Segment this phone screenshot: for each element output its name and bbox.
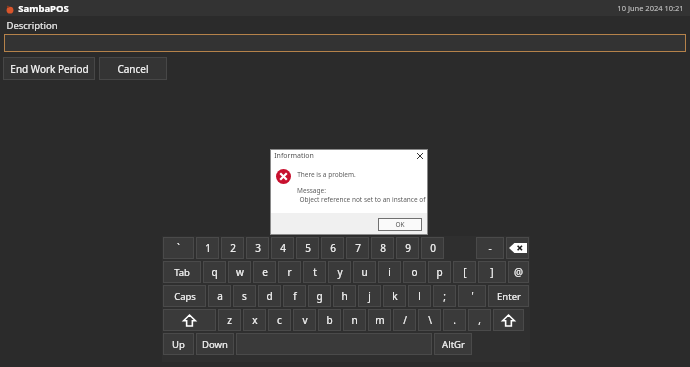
button[interactable]: 3: [246, 237, 269, 259]
button[interactable]: 1: [196, 237, 219, 259]
staticText: Information: [274, 151, 314, 161]
staticText: 0: [430, 241, 436, 255]
staticText: d: [266, 289, 273, 303]
button[interactable]: .: [443, 309, 466, 331]
staticText: -: [488, 241, 492, 255]
staticText: There is a problem.: [297, 170, 356, 179]
button[interactable]: ]: [478, 261, 506, 283]
staticText: h: [341, 289, 348, 303]
staticText: @: [514, 265, 523, 279]
button[interactable]: OK: [378, 218, 422, 231]
staticText: ': [471, 289, 474, 303]
staticText: w: [236, 265, 244, 279]
staticText: AltGr: [442, 338, 465, 351]
button[interactable]: End Work Period: [3, 57, 95, 80]
button[interactable]: Shift: [493, 309, 524, 331]
button[interactable]: z: [218, 309, 241, 331]
staticText: \: [428, 313, 432, 327]
staticText: Cancel: [117, 62, 149, 76]
button[interactable]: m: [368, 309, 391, 331]
staticText: b: [326, 313, 333, 327]
button[interactable]: Close: [415, 151, 425, 161]
staticText: p: [436, 265, 443, 279]
staticText: 2: [230, 241, 236, 255]
button[interactable]: h: [333, 285, 356, 307]
button[interactable]: c: [268, 309, 291, 331]
button[interactable]: 6: [321, 237, 344, 259]
staticText: End Work Period: [10, 62, 89, 76]
button[interactable]: x: [243, 309, 266, 331]
staticText: SambaPOS: [18, 2, 69, 15]
staticText: 8: [380, 241, 386, 255]
button[interactable]: q: [203, 261, 226, 283]
button[interactable]: 4: [271, 237, 294, 259]
button[interactable]: v: [293, 309, 316, 331]
button[interactable]: Backspace: [506, 237, 529, 259]
staticText: k: [392, 289, 398, 303]
button[interactable]: 5: [296, 237, 319, 259]
staticText: /: [403, 313, 407, 327]
staticText: 6: [330, 241, 336, 255]
button[interactable]: ,: [468, 309, 491, 331]
button[interactable]: /: [393, 309, 416, 331]
button[interactable]: [236, 333, 432, 355]
staticText: 10 June 2024 10:21: [617, 3, 684, 13]
button[interactable]: p: [428, 261, 451, 283]
button[interactable]: Tab: [163, 261, 201, 283]
button[interactable]: k: [383, 285, 406, 307]
button[interactable]: n: [343, 309, 366, 331]
staticText: a: [217, 289, 223, 303]
staticText: Tab: [174, 266, 190, 279]
button[interactable]: Caps: [163, 285, 206, 307]
staticText: q: [211, 265, 218, 279]
staticText: 5: [305, 241, 311, 255]
button[interactable]: o: [403, 261, 426, 283]
staticText: t: [313, 265, 317, 279]
button[interactable]: -: [476, 237, 504, 259]
button[interactable]: 0: [421, 237, 444, 259]
staticText: i: [388, 265, 391, 279]
staticText: Up: [172, 338, 185, 351]
button[interactable]: e: [253, 261, 276, 283]
button[interactable]: 2: [221, 237, 244, 259]
staticText: j: [368, 289, 371, 303]
button[interactable]: a: [208, 285, 231, 307]
button[interactable]: f: [283, 285, 306, 307]
button[interactable]: Up: [163, 333, 194, 355]
button[interactable]: 7: [346, 237, 369, 259]
other: Shift: [502, 314, 515, 327]
button[interactable]: g: [308, 285, 331, 307]
button[interactable]: [4, 34, 686, 52]
staticText: f: [293, 289, 297, 303]
button[interactable]: s: [233, 285, 256, 307]
button[interactable]: Cancel: [99, 57, 167, 80]
button[interactable]: b: [318, 309, 341, 331]
staticText: ;: [443, 289, 446, 303]
button[interactable]: r: [278, 261, 301, 283]
staticText: Enter: [497, 290, 521, 303]
button[interactable]: [: [453, 261, 476, 283]
staticText: u: [361, 265, 368, 279]
other: Shift: [183, 314, 196, 327]
button[interactable]: Enter: [488, 285, 529, 307]
staticText: `: [177, 241, 180, 255]
button[interactable]: d: [258, 285, 281, 307]
button[interactable]: AltGr: [434, 333, 472, 355]
button[interactable]: Shift: [163, 309, 216, 331]
button[interactable]: j: [358, 285, 381, 307]
button[interactable]: l: [408, 285, 431, 307]
button[interactable]: ;: [433, 285, 456, 307]
button[interactable]: 9: [396, 237, 419, 259]
button[interactable]: `: [163, 237, 194, 259]
button[interactable]: ': [458, 285, 486, 307]
button[interactable]: y: [328, 261, 351, 283]
button[interactable]: 8: [371, 237, 394, 259]
button[interactable]: Down: [196, 333, 234, 355]
button[interactable]: u: [353, 261, 376, 283]
button[interactable]: @: [508, 261, 529, 283]
button[interactable]: w: [228, 261, 251, 283]
staticText: v: [302, 313, 308, 327]
button[interactable]: i: [378, 261, 401, 283]
button[interactable]: \: [418, 309, 441, 331]
button[interactable]: t: [303, 261, 326, 283]
